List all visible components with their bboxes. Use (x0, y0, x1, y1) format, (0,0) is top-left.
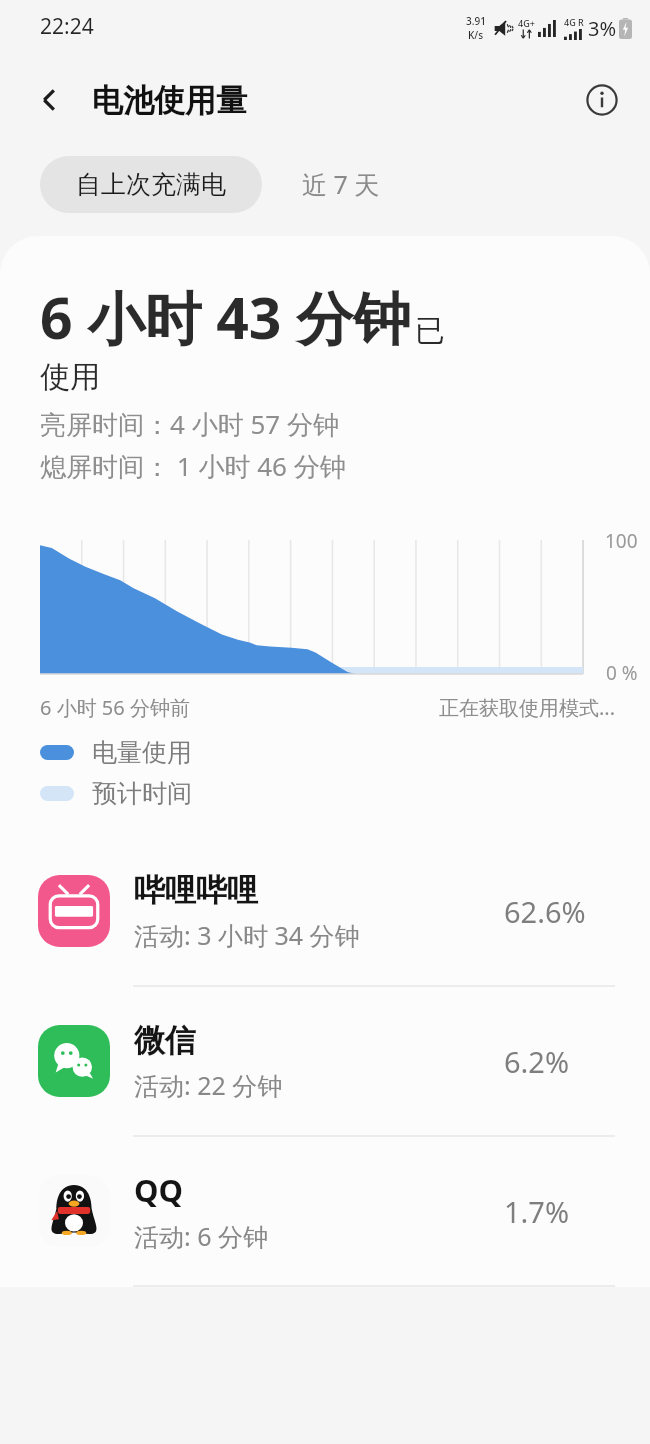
staticText: 活动: 3 小时 34 分钟 (134, 918, 360, 952)
staticText: 4G+ (518, 17, 535, 29)
staticText: 6.2% (504, 1042, 614, 1081)
staticText: 电池使用量 (92, 81, 247, 120)
button[interactable]: Back (26, 76, 74, 124)
button[interactable]: QQ (0, 1137, 650, 1285)
staticText: 活动: 6 分钟 (134, 1219, 269, 1253)
staticText: 正在获取使用模式... (439, 694, 616, 721)
staticText: 100 (605, 528, 638, 554)
staticText: 4G R (564, 16, 584, 28)
staticText: 电量使用 (92, 737, 192, 768)
staticText: 自上次充满电 (76, 169, 226, 200)
staticText: 3% (588, 15, 617, 42)
button[interactable]: 哔哩哔哩 (0, 837, 650, 985)
staticText: 0 % (606, 660, 638, 686)
staticText: 使用 (40, 358, 100, 396)
staticText: 22:24 (40, 12, 94, 41)
staticText: QQ (134, 1169, 184, 1211)
staticText: 微信 (134, 1021, 196, 1060)
staticText: 亮屏时间：4 小时 57 分钟 (40, 406, 339, 442)
staticText: 6 小时 43 分钟 (40, 278, 411, 356)
staticText: 1.7% (504, 1192, 614, 1231)
staticText: K/s (468, 28, 484, 42)
staticText: 预计时间 (92, 778, 192, 809)
staticText: 已 (415, 312, 445, 350)
staticText: 近 7 天 (302, 167, 380, 201)
staticText: 62.6% (504, 892, 614, 931)
staticText: 活动: 22 分钟 (134, 1068, 283, 1102)
staticText: 熄屏时间： 1 小时 46 分钟 (40, 448, 346, 484)
button[interactable]: 微信 (0, 987, 650, 1135)
button[interactable]: 近 7 天 (262, 154, 420, 214)
staticText: 3.91 (466, 14, 486, 28)
button[interactable]: Information (576, 74, 628, 126)
staticText: 哔哩哔哩 (134, 871, 258, 910)
staticText: 6 小时 56 分钟前 (40, 694, 190, 721)
button[interactable]: 自上次充满电 (40, 156, 262, 213)
